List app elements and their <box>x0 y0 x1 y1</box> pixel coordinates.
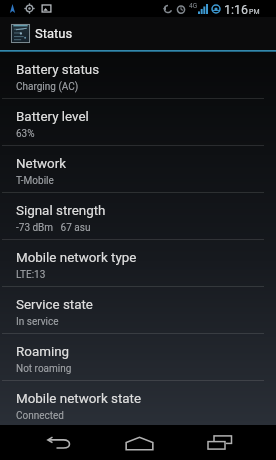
button[interactable]: Status <box>0 17 276 50</box>
button[interactable]: Recent apps <box>191 425 247 460</box>
staticText: Mobile network state <box>16 391 142 407</box>
button[interactable]: Roaming <box>0 334 276 381</box>
staticText: Mobile network type <box>16 250 137 266</box>
staticText: -73 dBm 67 asu <box>16 222 91 234</box>
staticText: Connected <box>16 410 65 422</box>
staticText: T-Mobile <box>16 175 54 187</box>
staticText: Not roaming <box>16 363 72 375</box>
button[interactable]: Battery status <box>0 52 276 99</box>
staticText: 1:16 <box>224 2 249 17</box>
staticText: Status <box>35 26 73 41</box>
button[interactable]: Battery level <box>0 99 276 146</box>
button[interactable]: Mobile network state <box>0 381 276 425</box>
button[interactable]: Home <box>111 425 167 460</box>
staticText: 63% <box>16 128 35 140</box>
staticText: LTE:13 <box>16 269 46 281</box>
staticText: 4G <box>189 2 198 10</box>
button[interactable]: Signal strength <box>0 193 276 240</box>
button[interactable]: Back <box>30 425 86 460</box>
staticText: Service state <box>16 297 93 313</box>
staticText: Network <box>16 156 67 172</box>
staticText: Battery status <box>16 62 100 78</box>
staticText: Roaming <box>16 344 70 360</box>
staticText: Battery level <box>16 109 89 125</box>
staticText: Signal strength <box>16 203 106 219</box>
staticText: PM <box>249 8 260 16</box>
button[interactable]: Service state <box>0 287 276 334</box>
staticText: Charging (AC) <box>16 81 79 93</box>
staticText: In service <box>16 316 59 328</box>
button[interactable]: Mobile network type <box>0 240 276 287</box>
button[interactable]: Network <box>0 146 276 193</box>
